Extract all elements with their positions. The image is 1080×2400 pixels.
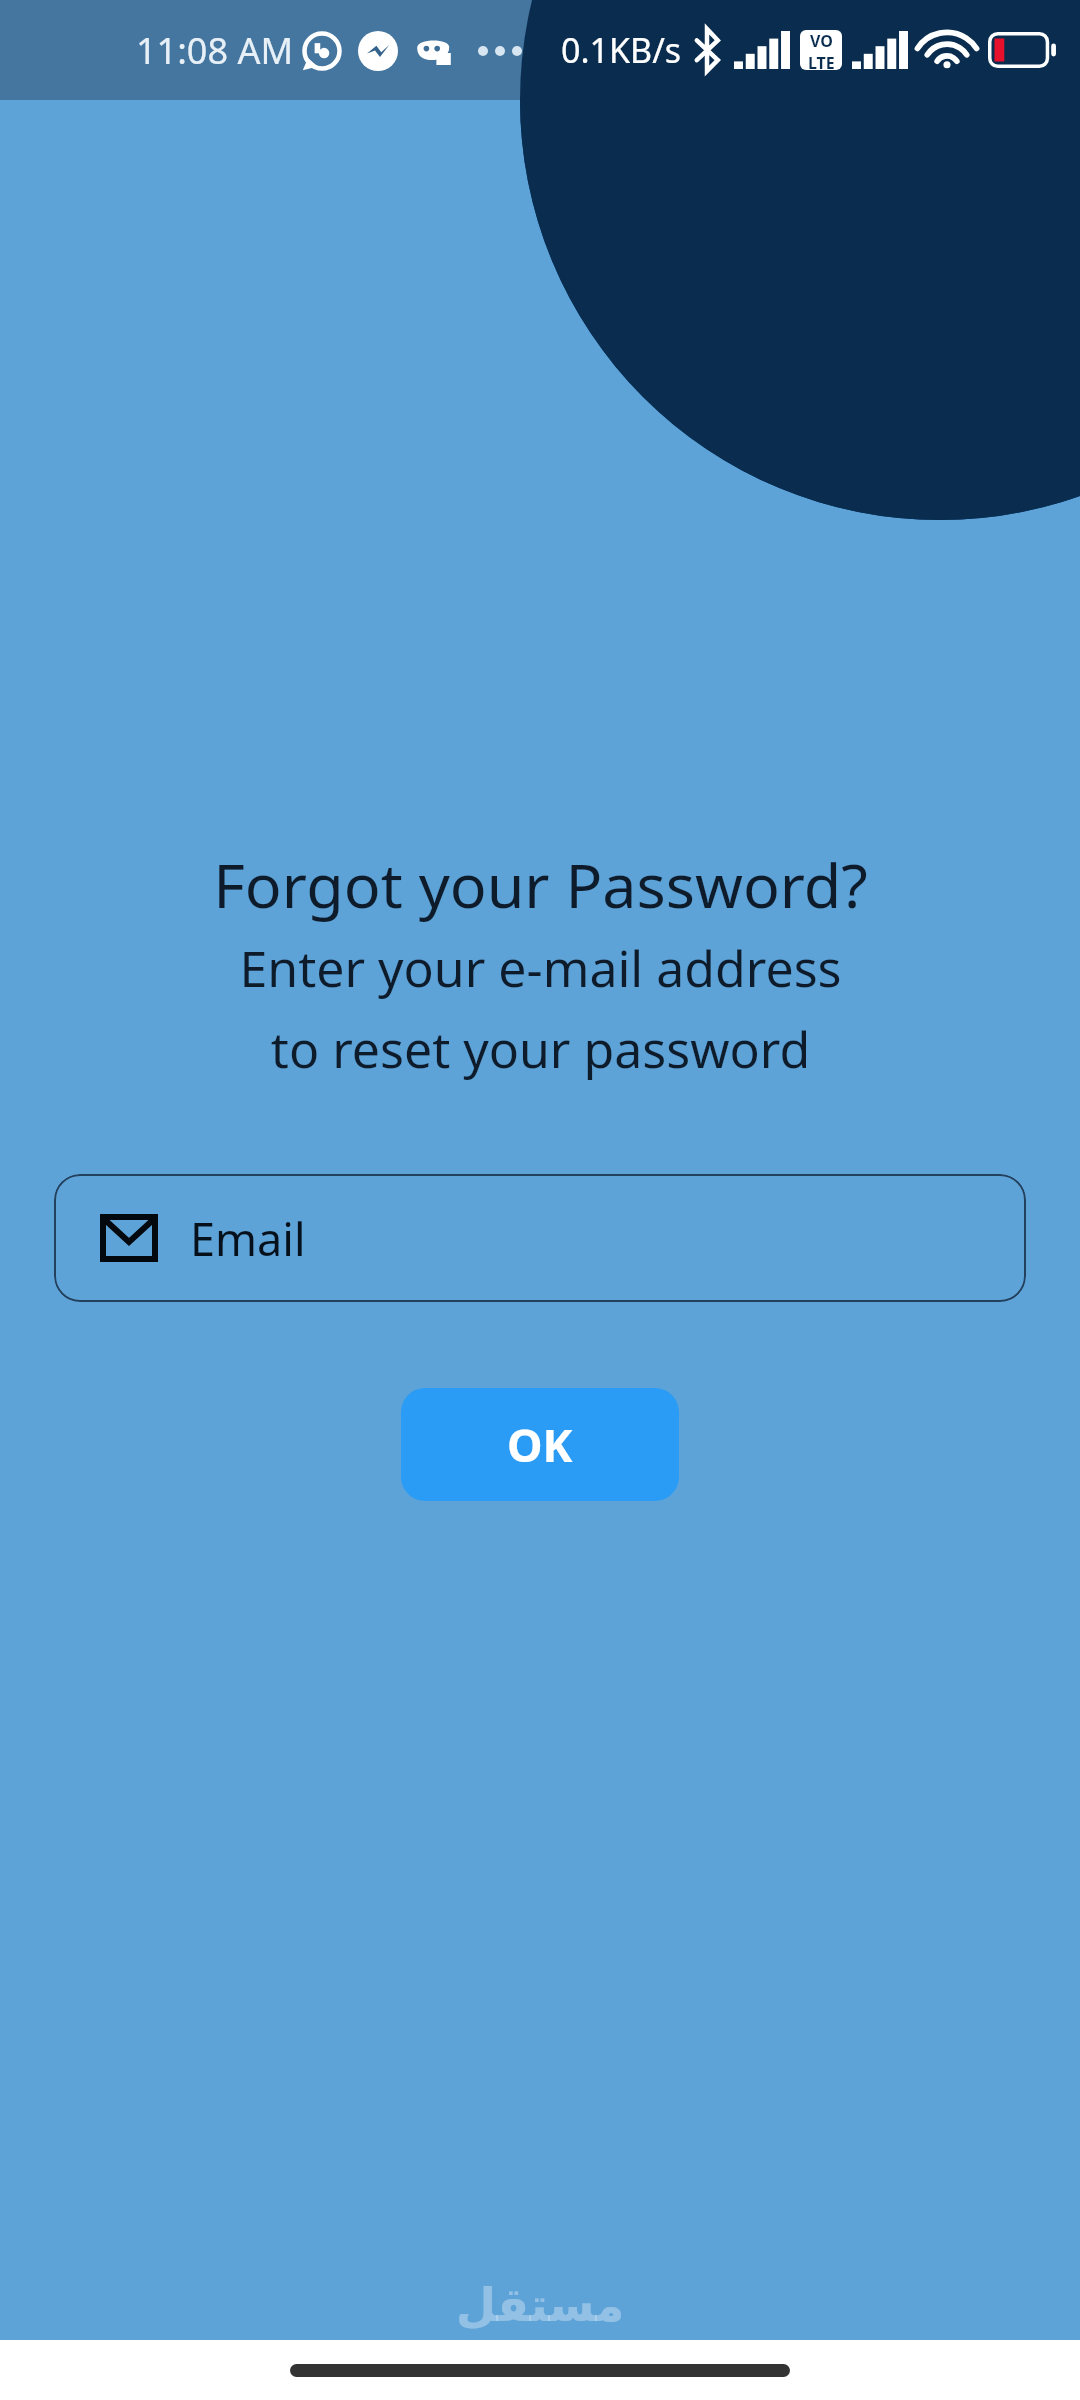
- staticText: OK: [507, 1414, 573, 1475]
- staticText: Enter your e-mail address to reset your …: [239, 934, 842, 1082]
- staticText: 0.1KB/s: [561, 27, 682, 73]
- staticText: VO: [810, 30, 833, 52]
- staticText: 11:08 AM: [136, 26, 294, 75]
- staticText: LTE: [808, 52, 835, 70]
- staticText: Forgot your Password?: [213, 843, 868, 926]
- staticText: Email: [190, 1208, 306, 1269]
- button[interactable]: Email: [54, 1174, 1026, 1302]
- button[interactable]: Home gesture bar: [290, 2364, 790, 2377]
- staticText: mostaql.com: [455, 2332, 626, 2370]
- staticText: مستقل: [456, 2278, 625, 2332]
- button[interactable]: OK: [401, 1388, 679, 1501]
